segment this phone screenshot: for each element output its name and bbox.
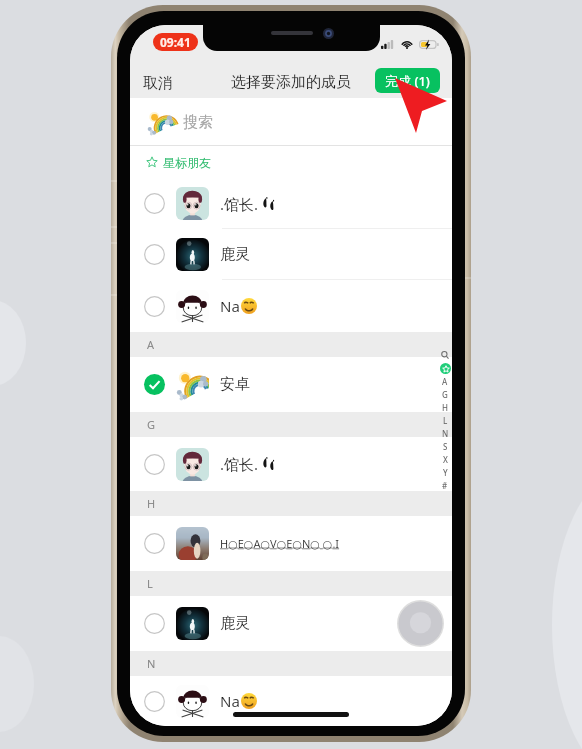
staticText: Y	[443, 467, 448, 478]
staticText: 星标朋友	[163, 155, 211, 170]
staticText: N	[147, 656, 156, 671]
staticText: 取消	[143, 74, 173, 93]
button[interactable]: Search index	[436, 348, 452, 361]
button[interactable]: H○E○A○V○E○N○ ○.I	[130, 516, 452, 571]
button[interactable]: Na	[130, 280, 452, 332]
button[interactable]: 取消	[138, 70, 178, 97]
button[interactable]: H	[436, 401, 452, 414]
button[interactable]: .馆长.	[130, 437, 452, 491]
staticText: L	[147, 576, 153, 591]
button[interactable]: 完成 (1)	[375, 68, 440, 93]
staticText: 安卓	[220, 375, 250, 394]
staticText: X	[443, 454, 448, 465]
staticText: H	[147, 496, 156, 511]
staticText: N	[442, 428, 449, 439]
staticText: 鹿灵	[220, 614, 250, 633]
button[interactable]: Starred friends	[436, 361, 452, 375]
button[interactable]: Na	[130, 676, 452, 726]
staticText: Na	[220, 691, 240, 711]
staticText: G	[442, 389, 448, 400]
staticText: Na	[220, 296, 240, 316]
button[interactable]: 星标朋友	[130, 146, 452, 178]
staticText: H○E○A○V○E○N○ ○.I	[220, 536, 340, 551]
button[interactable]: L	[436, 414, 452, 427]
staticText: S	[443, 441, 448, 452]
staticText: L	[443, 415, 448, 426]
staticText: #	[442, 480, 448, 491]
staticText: .馆长.	[220, 194, 259, 214]
button[interactable]: #	[436, 479, 452, 492]
staticText: 鹿灵	[220, 245, 250, 264]
staticText: 完成 (1)	[385, 72, 430, 90]
staticText: A	[442, 376, 448, 387]
staticText: .馆长.	[220, 454, 259, 474]
button[interactable]: A	[436, 375, 452, 388]
button[interactable]: AssistiveTouch	[397, 600, 444, 647]
button[interactable]: 鹿灵	[130, 229, 452, 280]
button[interactable]: 搜索	[130, 98, 452, 146]
button[interactable]: 鹿灵	[130, 596, 452, 651]
staticText: 搜索	[183, 113, 213, 132]
staticText: H	[442, 402, 448, 413]
button[interactable]: 安卓	[130, 357, 452, 412]
button[interactable]: G	[436, 388, 452, 401]
button[interactable]: N	[436, 427, 452, 440]
button[interactable]: .馆长.	[130, 178, 452, 229]
staticText: G	[147, 417, 156, 432]
staticText: 09:41	[160, 34, 191, 50]
button[interactable]: S	[436, 440, 452, 453]
button[interactable]: Y	[436, 466, 452, 479]
staticText: 选择要添加的成员	[231, 73, 351, 92]
button[interactable]: X	[436, 453, 452, 466]
staticText: A	[147, 337, 155, 352]
